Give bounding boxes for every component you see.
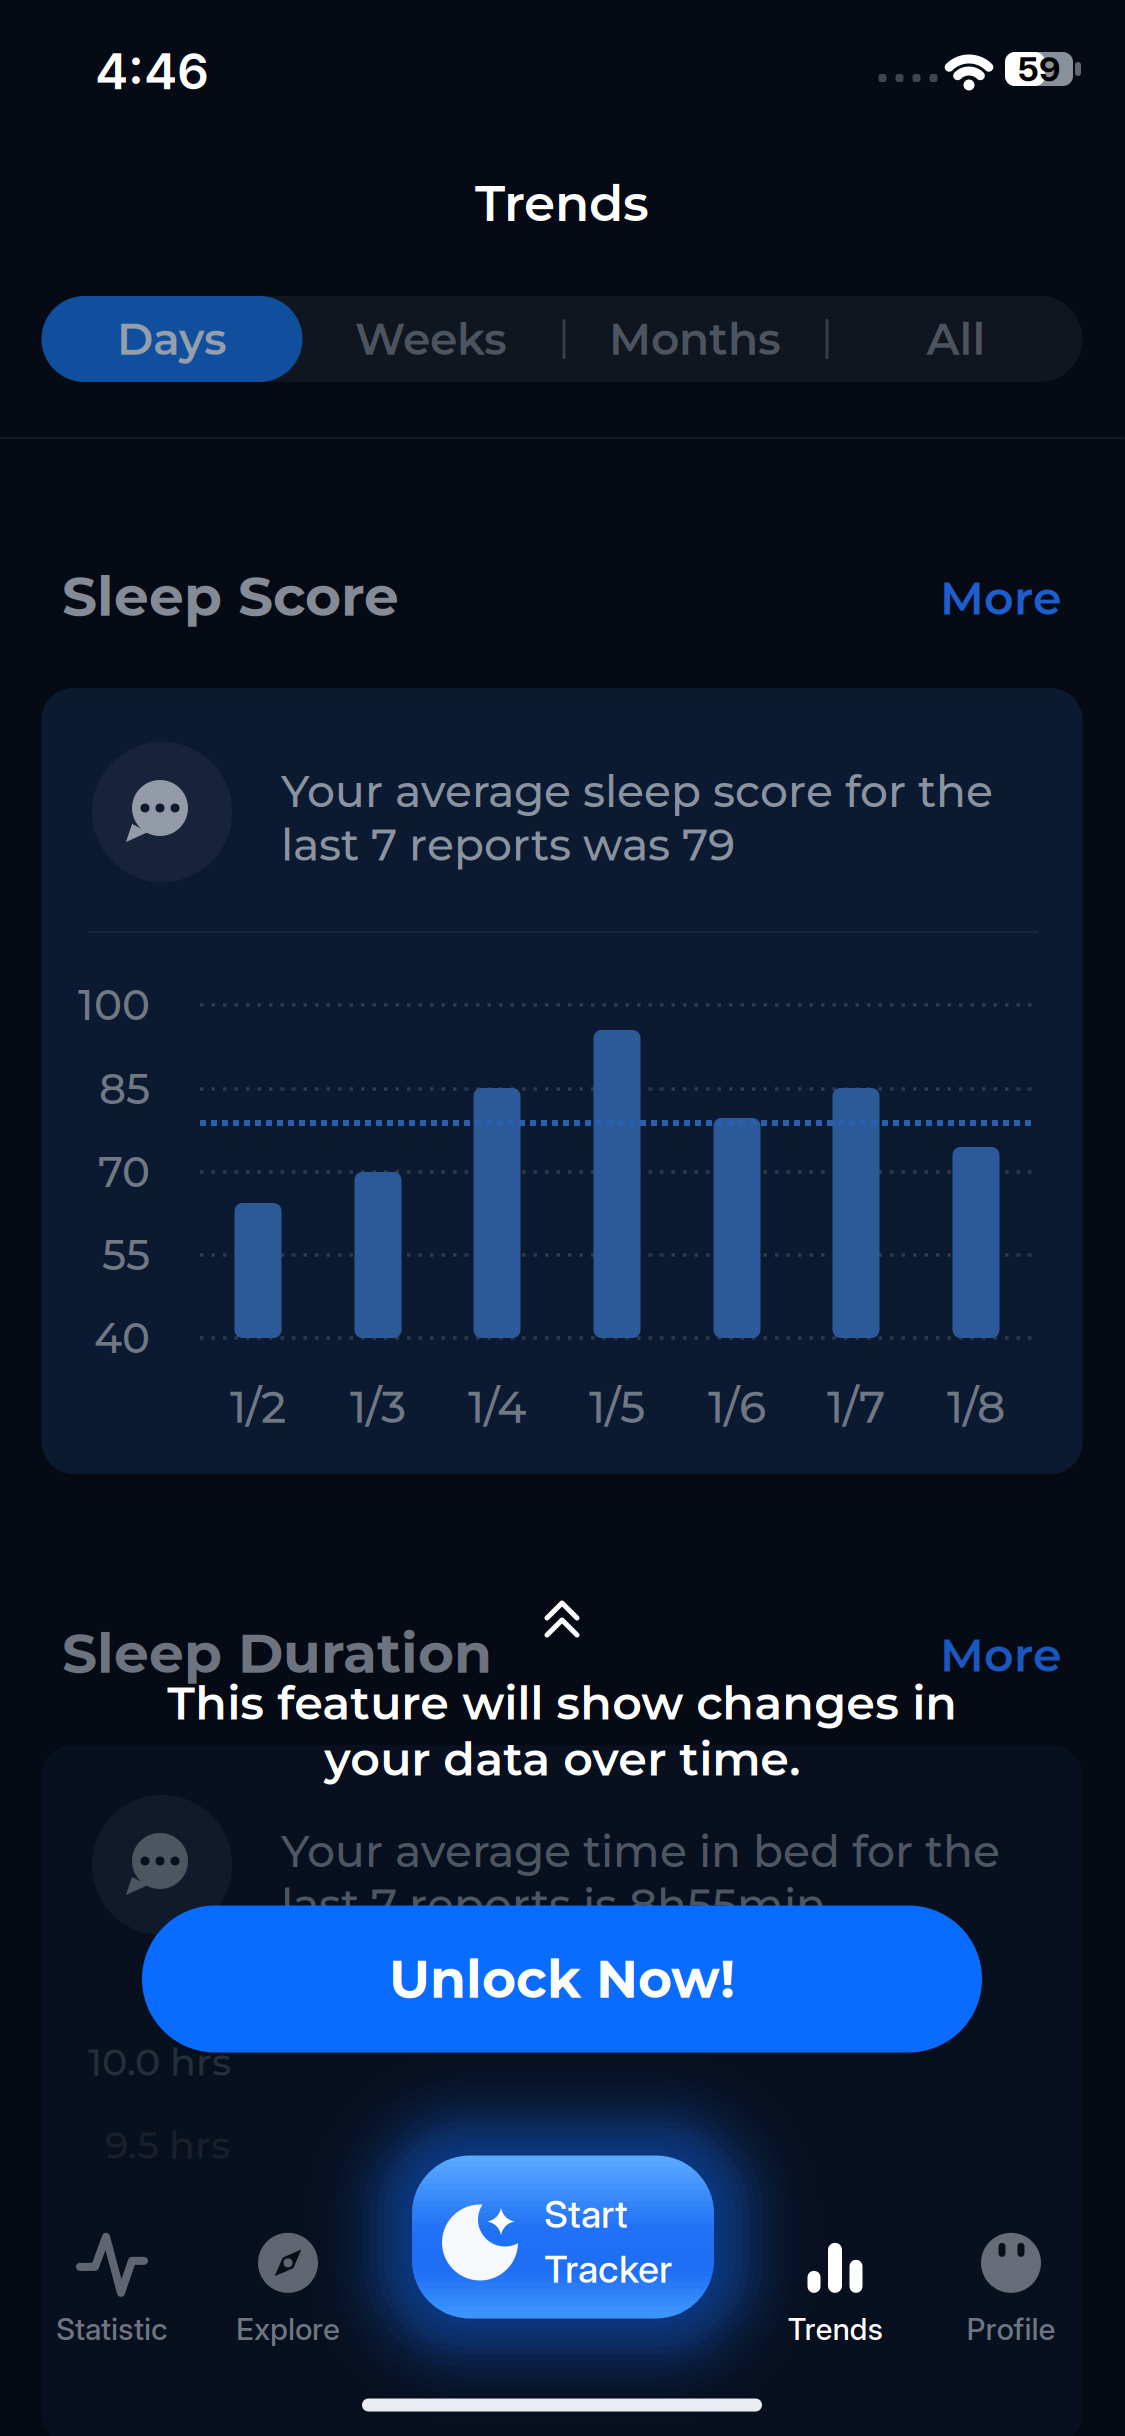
button[interactable]: Trends (787, 2233, 882, 2347)
staticText: 1/4 (468, 1380, 526, 1434)
staticText: 4:46 (95, 41, 209, 101)
staticText: 1/5 (589, 1380, 645, 1434)
staticText: Your average sleep score for the last 7 … (281, 764, 993, 872)
staticText: Statistic (56, 2311, 168, 2347)
button[interactable]: Unlock Now! (142, 1905, 982, 2052)
button[interactable]: Explore (236, 2233, 340, 2347)
staticText: 10.0 hrs (88, 2039, 231, 2085)
staticText: 55 (102, 1229, 150, 1281)
staticText: Unlock Now! (389, 1947, 735, 2011)
staticText: Trends (475, 172, 649, 233)
button[interactable]: Days (41, 296, 302, 382)
staticText: Months (609, 312, 781, 366)
staticText: Profile (966, 2311, 1055, 2347)
button[interactable]: Weeks (303, 296, 558, 382)
staticText: Sleep Score (62, 562, 399, 629)
staticText: This feature will show changes in your d… (167, 1675, 957, 1787)
staticText: 1/3 (350, 1380, 406, 1434)
staticText: 9.5 hrs (105, 2122, 230, 2168)
staticText: 1/7 (827, 1380, 885, 1434)
staticText: All (926, 312, 985, 366)
button[interactable]: Start (412, 2155, 714, 2318)
staticText: More (940, 570, 1062, 626)
staticText: Start (544, 2191, 628, 2237)
button[interactable]: More (940, 1627, 1062, 1683)
staticText: Days (117, 312, 227, 366)
staticText: 1/2 (230, 1380, 286, 1434)
staticText: 85 (99, 1063, 150, 1115)
staticText: Sleep Duration (62, 1619, 492, 1686)
staticText: 1/8 (947, 1380, 1005, 1434)
button[interactable]: More (940, 570, 1062, 626)
button[interactable]: Months (567, 296, 822, 382)
button[interactable]: All (828, 296, 1083, 382)
staticText: 59 (1018, 48, 1060, 89)
staticText: 70 (98, 1146, 150, 1198)
staticText: Explore (236, 2311, 340, 2347)
staticText: Your average time in bed for the last 7 … (281, 1824, 1000, 1932)
button[interactable]: Statistic (56, 2233, 168, 2347)
button[interactable]: Profile (966, 2233, 1055, 2347)
staticText: 100 (78, 979, 150, 1031)
staticText: 40 (94, 1312, 150, 1364)
staticText: More (940, 1627, 1062, 1683)
staticText: 1/6 (708, 1380, 766, 1434)
staticText: Tracker (544, 2246, 672, 2292)
staticText: Weeks (355, 312, 507, 366)
staticText: Trends (787, 2311, 882, 2347)
button[interactable]: Expand (544, 1598, 580, 1640)
